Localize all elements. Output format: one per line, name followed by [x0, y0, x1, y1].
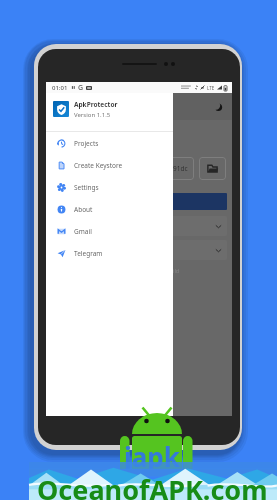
staticText: 01:01	[52, 84, 68, 92]
button[interactable]: Browse files	[199, 157, 226, 180]
staticText: LTE	[207, 85, 215, 91]
staticText: 91dc	[173, 164, 188, 173]
button[interactable]: About	[46, 198, 173, 220]
staticText: Settings	[74, 183, 99, 192]
staticText: Version 1.1.5	[74, 111, 111, 119]
staticText: Build	[166, 267, 180, 274]
button[interactable]: Projects	[46, 132, 173, 154]
staticText: OceanofAPK.com	[37, 471, 268, 500]
staticText: G	[78, 83, 84, 93]
button[interactable]: 91dc	[51, 157, 194, 180]
staticText: Telegram	[74, 249, 103, 258]
button[interactable]	[51, 216, 227, 236]
button[interactable]: Dark mode	[212, 101, 224, 113]
staticText: Create Keystore	[74, 161, 123, 170]
staticText: japk	[124, 439, 180, 474]
staticText: Projects	[74, 139, 99, 148]
button[interactable]	[51, 193, 227, 210]
button[interactable]: Gmail	[46, 220, 173, 242]
button[interactable]: ApkProtector	[53, 101, 173, 120]
button[interactable]: Telegram	[46, 242, 173, 264]
staticText: ApkProtector	[74, 100, 118, 109]
staticText: About	[74, 205, 93, 214]
button[interactable]: Create Keystore	[46, 154, 173, 176]
button[interactable]	[51, 240, 227, 260]
button[interactable]: Settings	[46, 176, 173, 198]
staticText: Gmail	[74, 227, 92, 236]
